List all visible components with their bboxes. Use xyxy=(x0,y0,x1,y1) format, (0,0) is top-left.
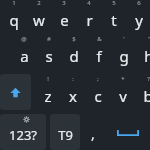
staticText: d xyxy=(69,46,79,66)
button[interactable]: * xyxy=(111,76,135,110)
staticText: 123? xyxy=(9,126,37,144)
button[interactable]: ' xyxy=(112,36,136,70)
staticText: @ xyxy=(21,35,27,43)
staticText: v xyxy=(119,86,127,106)
button[interactable]: 2 xyxy=(27,0,51,34)
button[interactable]: 1 xyxy=(2,0,26,34)
button[interactable]: # xyxy=(37,36,61,70)
button[interactable]: @ xyxy=(12,36,36,70)
staticText: 4 xyxy=(87,0,91,7)
staticText: ; xyxy=(97,75,99,83)
staticText: b xyxy=(143,86,150,106)
staticText: e xyxy=(60,10,69,30)
button[interactable]: 123? xyxy=(0,114,46,150)
staticText: 1 xyxy=(12,0,16,7)
staticText: # xyxy=(47,35,51,43)
button[interactable]: ? xyxy=(136,76,150,110)
button[interactable]: ; xyxy=(86,76,110,110)
button[interactable]: 6 xyxy=(127,0,150,34)
staticText: r xyxy=(86,10,93,30)
staticText: 5 xyxy=(112,0,116,7)
button[interactable]: & xyxy=(87,36,111,70)
button[interactable]: Space xyxy=(106,114,150,150)
button[interactable]: Shift xyxy=(0,74,31,110)
staticText: ' xyxy=(123,35,125,43)
button[interactable]: T9 xyxy=(50,114,80,150)
button[interactable]: 3 xyxy=(52,0,76,34)
staticText: c xyxy=(94,86,102,106)
staticText: , xyxy=(91,124,95,143)
staticText: x xyxy=(69,86,77,106)
staticText: a xyxy=(20,46,29,66)
staticText: 2 xyxy=(37,0,41,7)
staticText: z xyxy=(44,86,52,106)
staticText: " xyxy=(148,35,150,43)
staticText: h xyxy=(144,46,150,66)
button[interactable]: 5 xyxy=(102,0,126,34)
staticText: s xyxy=(45,46,53,66)
staticText: * xyxy=(121,75,125,83)
staticText: t xyxy=(111,10,117,30)
staticText: g xyxy=(119,46,129,66)
button[interactable]: ! xyxy=(36,76,60,110)
button[interactable]: " xyxy=(137,36,150,70)
staticText: ! xyxy=(47,75,49,83)
staticText: y xyxy=(135,10,143,30)
staticText: ? xyxy=(147,75,150,83)
staticText: w xyxy=(33,10,45,30)
staticText: $ xyxy=(72,35,76,43)
button[interactable]: $ xyxy=(62,36,86,70)
staticText: & xyxy=(97,35,102,43)
staticText: 3 xyxy=(62,0,66,7)
staticText: T9 xyxy=(58,126,73,144)
staticText: 6 xyxy=(137,0,141,7)
staticText: f xyxy=(96,46,102,66)
staticText: q xyxy=(9,10,19,30)
button[interactable]: : xyxy=(61,76,85,110)
button[interactable]: , xyxy=(82,114,104,150)
staticText: : xyxy=(72,75,74,83)
button[interactable]: 4 xyxy=(77,0,101,34)
